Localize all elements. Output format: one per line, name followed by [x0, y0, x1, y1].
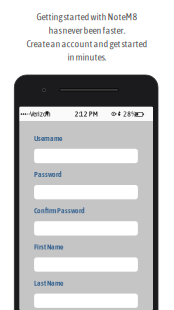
- button[interactable]: Confirm Password: [34, 206, 138, 235]
- button[interactable]: Last Name: [34, 279, 138, 308]
- staticText: Create an account and get started: [26, 38, 147, 49]
- staticText: 28%: [123, 109, 136, 118]
- staticText: Password: [34, 170, 62, 179]
- staticText: Verizon: [30, 110, 51, 118]
- staticText: First Name: [34, 242, 63, 251]
- staticText: Last Name: [34, 279, 63, 287]
- staticText: Getting started with NoteM8: [36, 11, 137, 22]
- staticText: in minutes.: [67, 51, 106, 63]
- staticText: Confirm Password: [34, 206, 85, 215]
- button[interactable]: First Name: [34, 242, 138, 272]
- staticText: 2:12 PM: [75, 109, 98, 118]
- staticText: Username: [34, 134, 62, 142]
- button[interactable]: Username: [34, 134, 138, 163]
- staticText: has never been faster.: [48, 24, 125, 36]
- button[interactable]: Password: [34, 170, 138, 199]
